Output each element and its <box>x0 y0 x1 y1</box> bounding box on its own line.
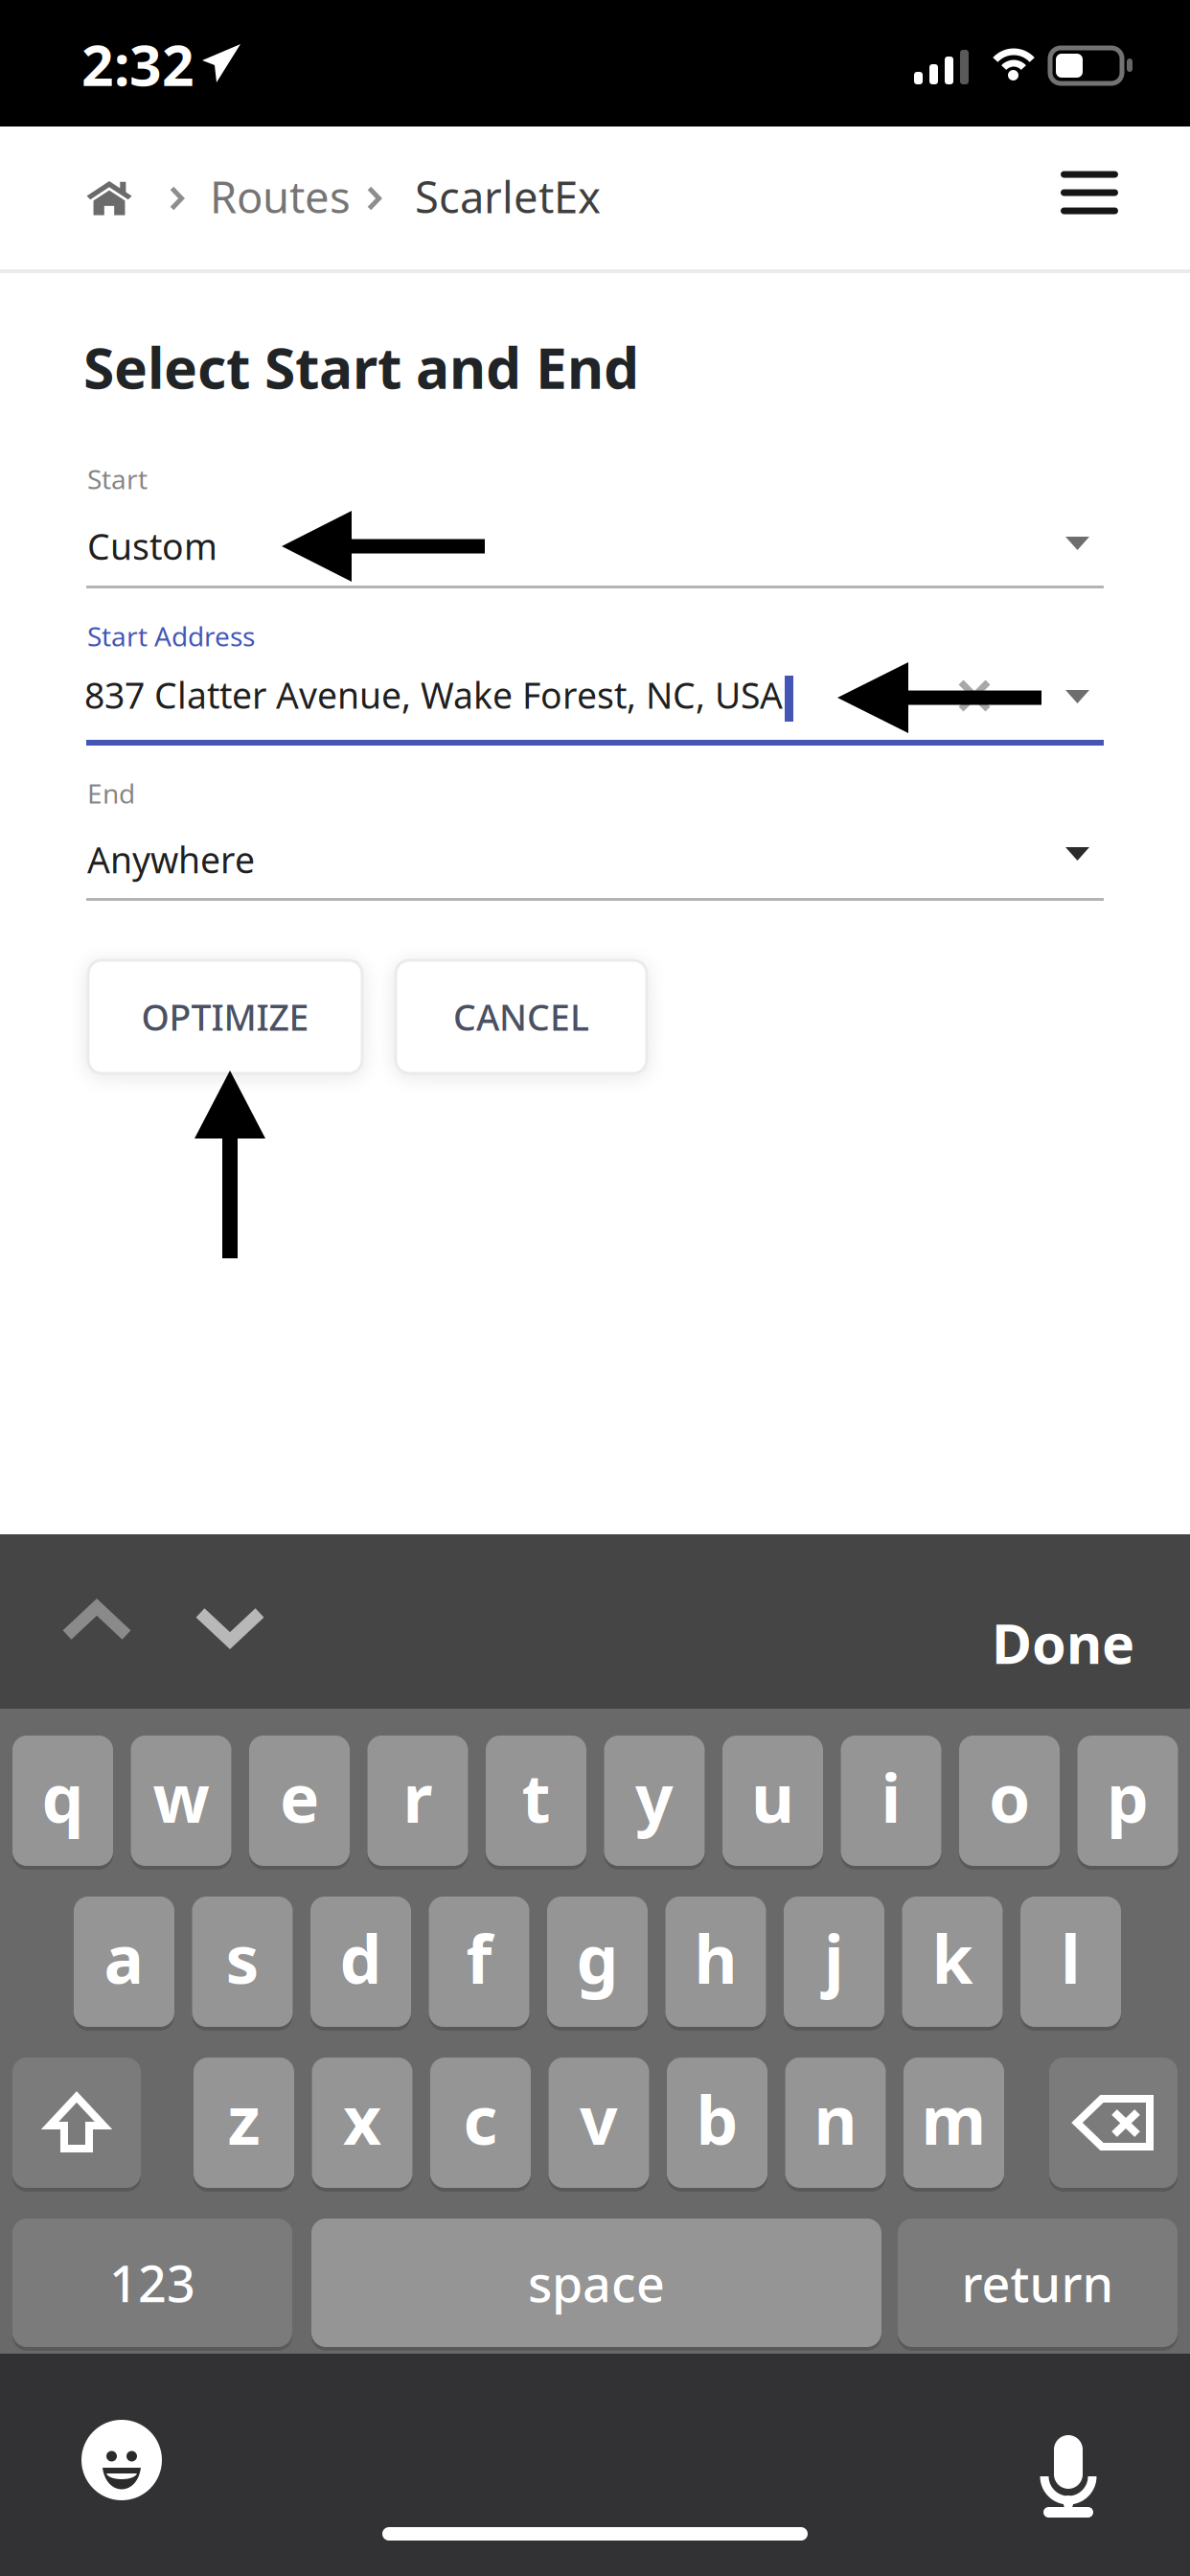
button[interactable]: l <box>1020 1895 1121 2029</box>
button[interactable]: p <box>1077 1734 1178 1868</box>
button[interactable]: z <box>194 2056 294 2190</box>
button[interactable]: Home <box>75 169 144 226</box>
staticText: h <box>694 1914 737 2002</box>
button[interactable]: Emoji keyboard <box>67 2405 176 2515</box>
button[interactable]: Routes <box>210 163 351 230</box>
staticText: i <box>881 1753 901 1841</box>
staticText: p <box>1107 1753 1149 1841</box>
button[interactable]: y <box>604 1734 705 1868</box>
staticText: End <box>87 775 135 811</box>
staticText: n <box>814 2075 857 2163</box>
staticText: r <box>403 1753 433 1841</box>
staticText: Routes <box>210 168 351 225</box>
button[interactable]: r <box>367 1734 468 1868</box>
button[interactable]: f <box>429 1895 529 2029</box>
button[interactable]: i <box>841 1734 941 1868</box>
button[interactable]: v <box>549 2056 649 2190</box>
button[interactable]: OPTIMIZE <box>88 960 362 1073</box>
staticText: z <box>228 2075 260 2163</box>
staticText: space <box>528 2250 665 2316</box>
staticText: c <box>463 2075 498 2163</box>
staticText: return <box>961 2250 1114 2316</box>
staticText: Custom <box>87 522 217 570</box>
staticText: f <box>466 1914 492 2002</box>
staticText: ScarletEx <box>415 168 601 225</box>
button[interactable]: CANCEL <box>396 960 647 1073</box>
button[interactable]: o <box>959 1734 1060 1868</box>
staticText: Select Start and End <box>83 330 639 404</box>
button[interactable]: j <box>784 1895 884 2029</box>
staticText: d <box>340 1914 382 2002</box>
staticText: s <box>226 1914 259 2002</box>
button[interactable]: return <box>898 2217 1178 2349</box>
button[interactable]: c <box>430 2056 531 2190</box>
staticText: Start Address <box>87 618 255 654</box>
button[interactable]: Menu <box>1046 159 1133 226</box>
staticText: y <box>635 1753 674 1841</box>
button[interactable]: Delete <box>1049 2056 1178 2190</box>
staticText: CANCEL <box>453 993 589 1041</box>
button[interactable]: w <box>131 1734 231 1868</box>
staticText: a <box>104 1914 144 2002</box>
button[interactable]: n <box>785 2056 886 2190</box>
button[interactable]: m <box>904 2056 1004 2190</box>
button[interactable]: 123 <box>12 2217 292 2349</box>
button[interactable]: t <box>486 1734 586 1868</box>
staticText: v <box>580 2075 618 2163</box>
staticText: Start <box>87 461 148 497</box>
button[interactable]: Next field <box>194 1606 266 1648</box>
button[interactable]: Previous field <box>60 1600 133 1643</box>
staticText: x <box>343 2075 381 2163</box>
staticText: Anywhere <box>87 836 255 883</box>
button[interactable]: a <box>74 1895 174 2029</box>
button[interactable]: d <box>310 1895 411 2029</box>
staticText: Done <box>992 1606 1134 1679</box>
staticText: o <box>989 1753 1030 1841</box>
staticText: m <box>921 2075 986 2163</box>
staticText: 837 Clatter Avenue, Wake Forest, NC, USA <box>84 671 783 719</box>
staticText: j <box>824 1914 844 2002</box>
button[interactable]: h <box>665 1895 766 2029</box>
button[interactable]: Dictate <box>1014 2407 1123 2517</box>
staticText: w <box>153 1753 209 1841</box>
button[interactable]: q <box>12 1734 113 1868</box>
button[interactable]: u <box>722 1734 823 1868</box>
staticText: e <box>280 1753 319 1841</box>
button[interactable]: s <box>192 1895 293 2029</box>
button[interactable]: x <box>312 2056 412 2190</box>
staticText: g <box>576 1914 618 2002</box>
button[interactable]: Done <box>992 1607 1134 1678</box>
staticText: 2:32 <box>81 27 195 101</box>
button[interactable]: space <box>311 2217 881 2349</box>
staticText: t <box>522 1753 550 1841</box>
staticText: k <box>932 1914 973 2002</box>
button[interactable]: b <box>667 2056 767 2190</box>
staticText: q <box>42 1753 84 1841</box>
staticText: 123 <box>109 2250 195 2316</box>
staticText: OPTIMIZE <box>141 993 309 1041</box>
button[interactable]: e <box>249 1734 350 1868</box>
button[interactable]: g <box>547 1895 648 2029</box>
staticText: l <box>1061 1914 1081 2002</box>
button[interactable]: Shift <box>12 2056 141 2190</box>
staticText: b <box>696 2075 738 2163</box>
button[interactable]: k <box>902 1895 1003 2029</box>
staticText: u <box>751 1753 794 1841</box>
